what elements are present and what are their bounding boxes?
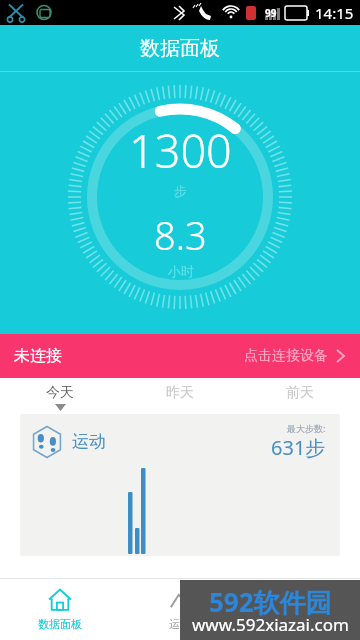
- button[interactable]: 昨天: [120, 378, 240, 414]
- button[interactable]: 运动: [20, 414, 340, 556]
- staticText: 631步: [271, 434, 326, 461]
- staticText: 8.3: [154, 209, 207, 261]
- button[interactable]: 运动: [120, 578, 240, 640]
- staticText: 小时: [168, 263, 194, 279]
- staticText: 运动: [72, 431, 106, 452]
- staticText: 14:15: [315, 3, 354, 23]
- button[interactable]: 数据面板: [0, 578, 120, 640]
- staticText: 运动: [169, 617, 191, 631]
- button[interactable]: 今天: [0, 378, 120, 414]
- staticText: 最大步数:: [287, 422, 326, 434]
- staticText: 未连接: [14, 346, 62, 366]
- staticText: 1300: [129, 120, 232, 181]
- button[interactable]: 未连接: [0, 334, 360, 378]
- staticText: 点击连接设备: [244, 347, 328, 365]
- staticText: www.592xiazai.com: [192, 613, 349, 636]
- button[interactable]: 前天: [240, 378, 360, 414]
- staticText: 99: [265, 6, 277, 20]
- button[interactable]: 我的: [240, 578, 360, 640]
- staticText: 数据面板: [140, 36, 220, 61]
- staticText: 今天: [46, 384, 74, 402]
- staticText: 592软件园: [209, 584, 332, 620]
- staticText: 步: [174, 183, 187, 199]
- staticText: 我的: [289, 617, 311, 631]
- staticText: 昨天: [166, 384, 194, 402]
- staticText: 前天: [286, 384, 314, 402]
- staticText: 数据面板: [38, 617, 82, 631]
